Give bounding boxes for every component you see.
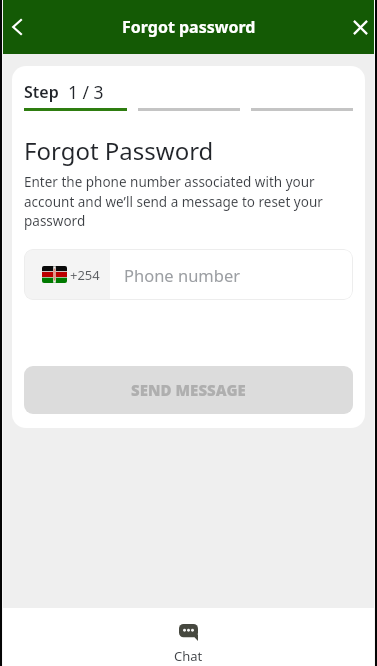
staticText: Enter the phone number associated with y… <box>24 173 353 230</box>
staticText: Step <box>24 81 59 103</box>
button[interactable]: SEND MESSAGE <box>24 366 353 414</box>
button[interactable]: Back <box>1 11 33 43</box>
staticText: Forgot password <box>122 16 256 38</box>
staticText: Forgot Password <box>24 134 214 167</box>
button[interactable]: Phone number <box>124 249 353 300</box>
staticText: 1 / 3 <box>68 80 104 104</box>
button[interactable]: Close <box>344 11 376 43</box>
staticText: +254 <box>70 266 100 284</box>
staticText: SEND MESSAGE <box>131 380 246 400</box>
button[interactable]: Chat <box>174 624 203 665</box>
staticText: Chat <box>174 647 203 665</box>
button[interactable]: +254 <box>24 249 110 300</box>
staticText: Phone number <box>124 264 241 286</box>
